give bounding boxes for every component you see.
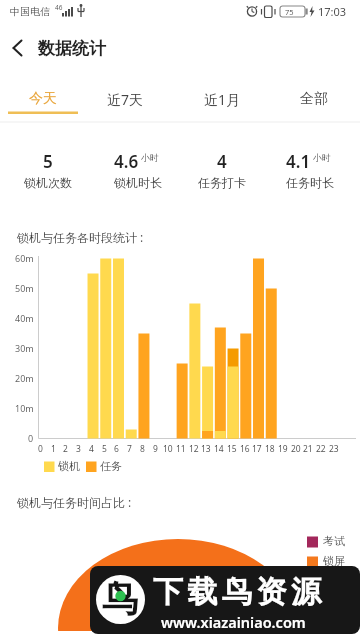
staticText: 5 bbox=[102, 443, 107, 455]
staticText: 近1月 bbox=[204, 90, 241, 109]
button[interactable]: 今天 bbox=[8, 84, 78, 114]
staticText: 小时 bbox=[141, 152, 159, 163]
staticText: 9 bbox=[153, 443, 158, 455]
staticText: 23 bbox=[329, 443, 339, 455]
staticText: 下载鸟资源 bbox=[153, 573, 326, 611]
staticText: 4.6 bbox=[114, 150, 139, 173]
staticText: 锁屏 bbox=[323, 554, 345, 568]
staticText: 20m bbox=[15, 372, 34, 384]
button[interactable] bbox=[4, 34, 32, 62]
staticText: 锁机与任务时间占比 : bbox=[17, 494, 132, 510]
staticText: 8 bbox=[140, 443, 145, 455]
staticText: 小时 bbox=[313, 152, 331, 163]
staticText: 5 bbox=[43, 150, 53, 173]
button[interactable]: 近7天 bbox=[90, 84, 160, 114]
staticText: 22 bbox=[316, 443, 326, 455]
staticText: 30m bbox=[15, 342, 34, 354]
staticText: 12 bbox=[189, 443, 199, 455]
staticText: 中国电信 bbox=[10, 5, 50, 18]
staticText: 14 bbox=[214, 443, 224, 455]
staticText: 1 bbox=[51, 443, 56, 455]
staticText: 75 bbox=[285, 7, 294, 17]
staticText: 锁机与任务各时段统计 : bbox=[17, 229, 144, 245]
staticText: 46 bbox=[55, 3, 63, 12]
button[interactable]: 全部 bbox=[279, 84, 349, 114]
staticText: 60m bbox=[15, 252, 34, 264]
staticText: 7 bbox=[127, 443, 132, 455]
staticText: 50m bbox=[15, 282, 34, 294]
staticText: 6 bbox=[114, 443, 119, 455]
staticText: 数据统计 bbox=[38, 38, 106, 59]
staticText: 4 bbox=[217, 150, 227, 173]
staticText: 19 bbox=[278, 443, 288, 455]
staticText: 40m bbox=[15, 312, 34, 324]
staticText: 近7天 bbox=[107, 90, 144, 109]
staticText: 20 bbox=[291, 443, 301, 455]
staticText: 2 bbox=[63, 443, 68, 455]
staticText: 4.1 bbox=[286, 150, 311, 173]
staticText: 今天 bbox=[29, 90, 57, 108]
staticText: 17 bbox=[252, 443, 262, 455]
staticText: 21 bbox=[303, 443, 313, 455]
staticText: 13 bbox=[201, 443, 211, 455]
button[interactable]: 近1月 bbox=[187, 84, 257, 114]
staticText: 16 bbox=[240, 443, 250, 455]
staticText: 10m bbox=[15, 402, 34, 414]
staticText: 11 bbox=[176, 443, 186, 455]
staticText: 18 bbox=[265, 443, 275, 455]
staticText: 任务 bbox=[100, 459, 122, 473]
staticText: 考试 bbox=[323, 534, 345, 548]
staticText: 任务打卡 bbox=[198, 175, 246, 190]
staticText: 任务时长 bbox=[286, 175, 334, 190]
staticText: 10 bbox=[163, 443, 173, 455]
staticText: 3 bbox=[76, 443, 81, 455]
staticText: www.xiazainiao.com bbox=[161, 612, 306, 632]
staticText: 4 bbox=[89, 443, 94, 455]
staticText: 0 bbox=[38, 443, 43, 455]
staticText: 锁机时长 bbox=[114, 175, 162, 190]
staticText: 鸟 bbox=[102, 576, 138, 621]
staticText: 全部 bbox=[300, 90, 328, 108]
staticText: 17:03 bbox=[318, 4, 347, 19]
button[interactable]: 鸟 bbox=[90, 566, 360, 634]
staticText: 15 bbox=[227, 443, 237, 455]
staticText: 锁机次数 bbox=[24, 175, 72, 190]
staticText: 0 bbox=[28, 432, 34, 444]
staticText: 锁机 bbox=[58, 459, 80, 473]
